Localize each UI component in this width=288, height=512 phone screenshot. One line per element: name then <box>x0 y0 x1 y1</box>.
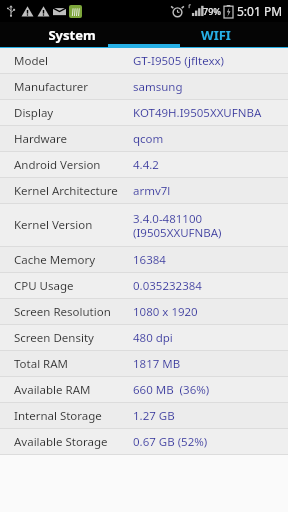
staticText: 5:01 PM <box>237 3 283 19</box>
staticText: armv7l <box>133 183 171 199</box>
button[interactable]: Total RAM <box>0 351 288 376</box>
button[interactable]: Hardware <box>0 126 288 151</box>
button[interactable]: WIFI <box>144 22 288 48</box>
button[interactable]: System <box>0 22 144 48</box>
staticText: Screen Resolution <box>14 304 133 320</box>
staticText: WIFI <box>201 26 231 44</box>
staticText: Hardware <box>14 131 133 147</box>
staticText: GT-I9505 (jfltexx) <box>133 53 225 69</box>
staticText: 1.27 GB <box>133 408 175 424</box>
button[interactable]: Screen Resolution <box>0 299 288 324</box>
staticText: KOT49H.I9505XXUFNBA <box>133 105 262 121</box>
button[interactable]: Android Version <box>0 152 288 177</box>
staticText: Total RAM <box>14 356 133 372</box>
staticText: 660 MB (36%) <box>133 382 210 398</box>
staticText: Available Storage <box>14 434 133 450</box>
staticText: 0.035232384 <box>133 278 202 294</box>
staticText: samsung <box>133 79 183 95</box>
staticText: Kernel Architecture <box>14 183 133 199</box>
button[interactable]: Kernel Architecture <box>0 178 288 203</box>
staticText: Kernel Version <box>14 217 133 233</box>
button[interactable]: Model <box>0 48 288 73</box>
staticText: 480 dpi <box>133 330 173 346</box>
staticText: qcom <box>133 131 164 147</box>
button[interactable]: Manufacturer <box>0 74 288 99</box>
staticText: Cache Memory <box>14 252 133 268</box>
staticText: Screen Density <box>14 330 133 346</box>
button[interactable]: Kernel Version <box>0 204 288 246</box>
staticText: System <box>48 26 96 44</box>
staticText: 4.4.2 <box>133 157 159 173</box>
staticText: Android Version <box>14 157 133 173</box>
staticText: 0.67 GB (52%) <box>133 434 208 450</box>
staticText: CPU Usage <box>14 278 133 294</box>
button[interactable]: Screen Density <box>0 325 288 350</box>
staticText: Available RAM <box>14 382 133 398</box>
staticText: 16384 <box>133 252 166 268</box>
staticText: 3.4.0-481100 (I9505XXUFNBA) <box>133 211 222 240</box>
button[interactable]: Available Storage <box>0 429 288 454</box>
staticText: 1817 MB <box>133 356 181 372</box>
button[interactable]: CPU Usage <box>0 273 288 298</box>
button[interactable]: Cache Memory <box>0 247 288 272</box>
staticText: Manufacturer <box>14 79 133 95</box>
button[interactable]: Available RAM <box>0 377 288 402</box>
staticText: Internal Storage <box>14 408 133 424</box>
button[interactable]: Display <box>0 100 288 125</box>
staticText: Display <box>14 105 133 121</box>
staticText: 1080 x 1920 <box>133 304 198 320</box>
button[interactable]: Internal Storage <box>0 403 288 428</box>
staticText: Model <box>14 53 133 69</box>
staticText: 79% <box>203 5 221 17</box>
